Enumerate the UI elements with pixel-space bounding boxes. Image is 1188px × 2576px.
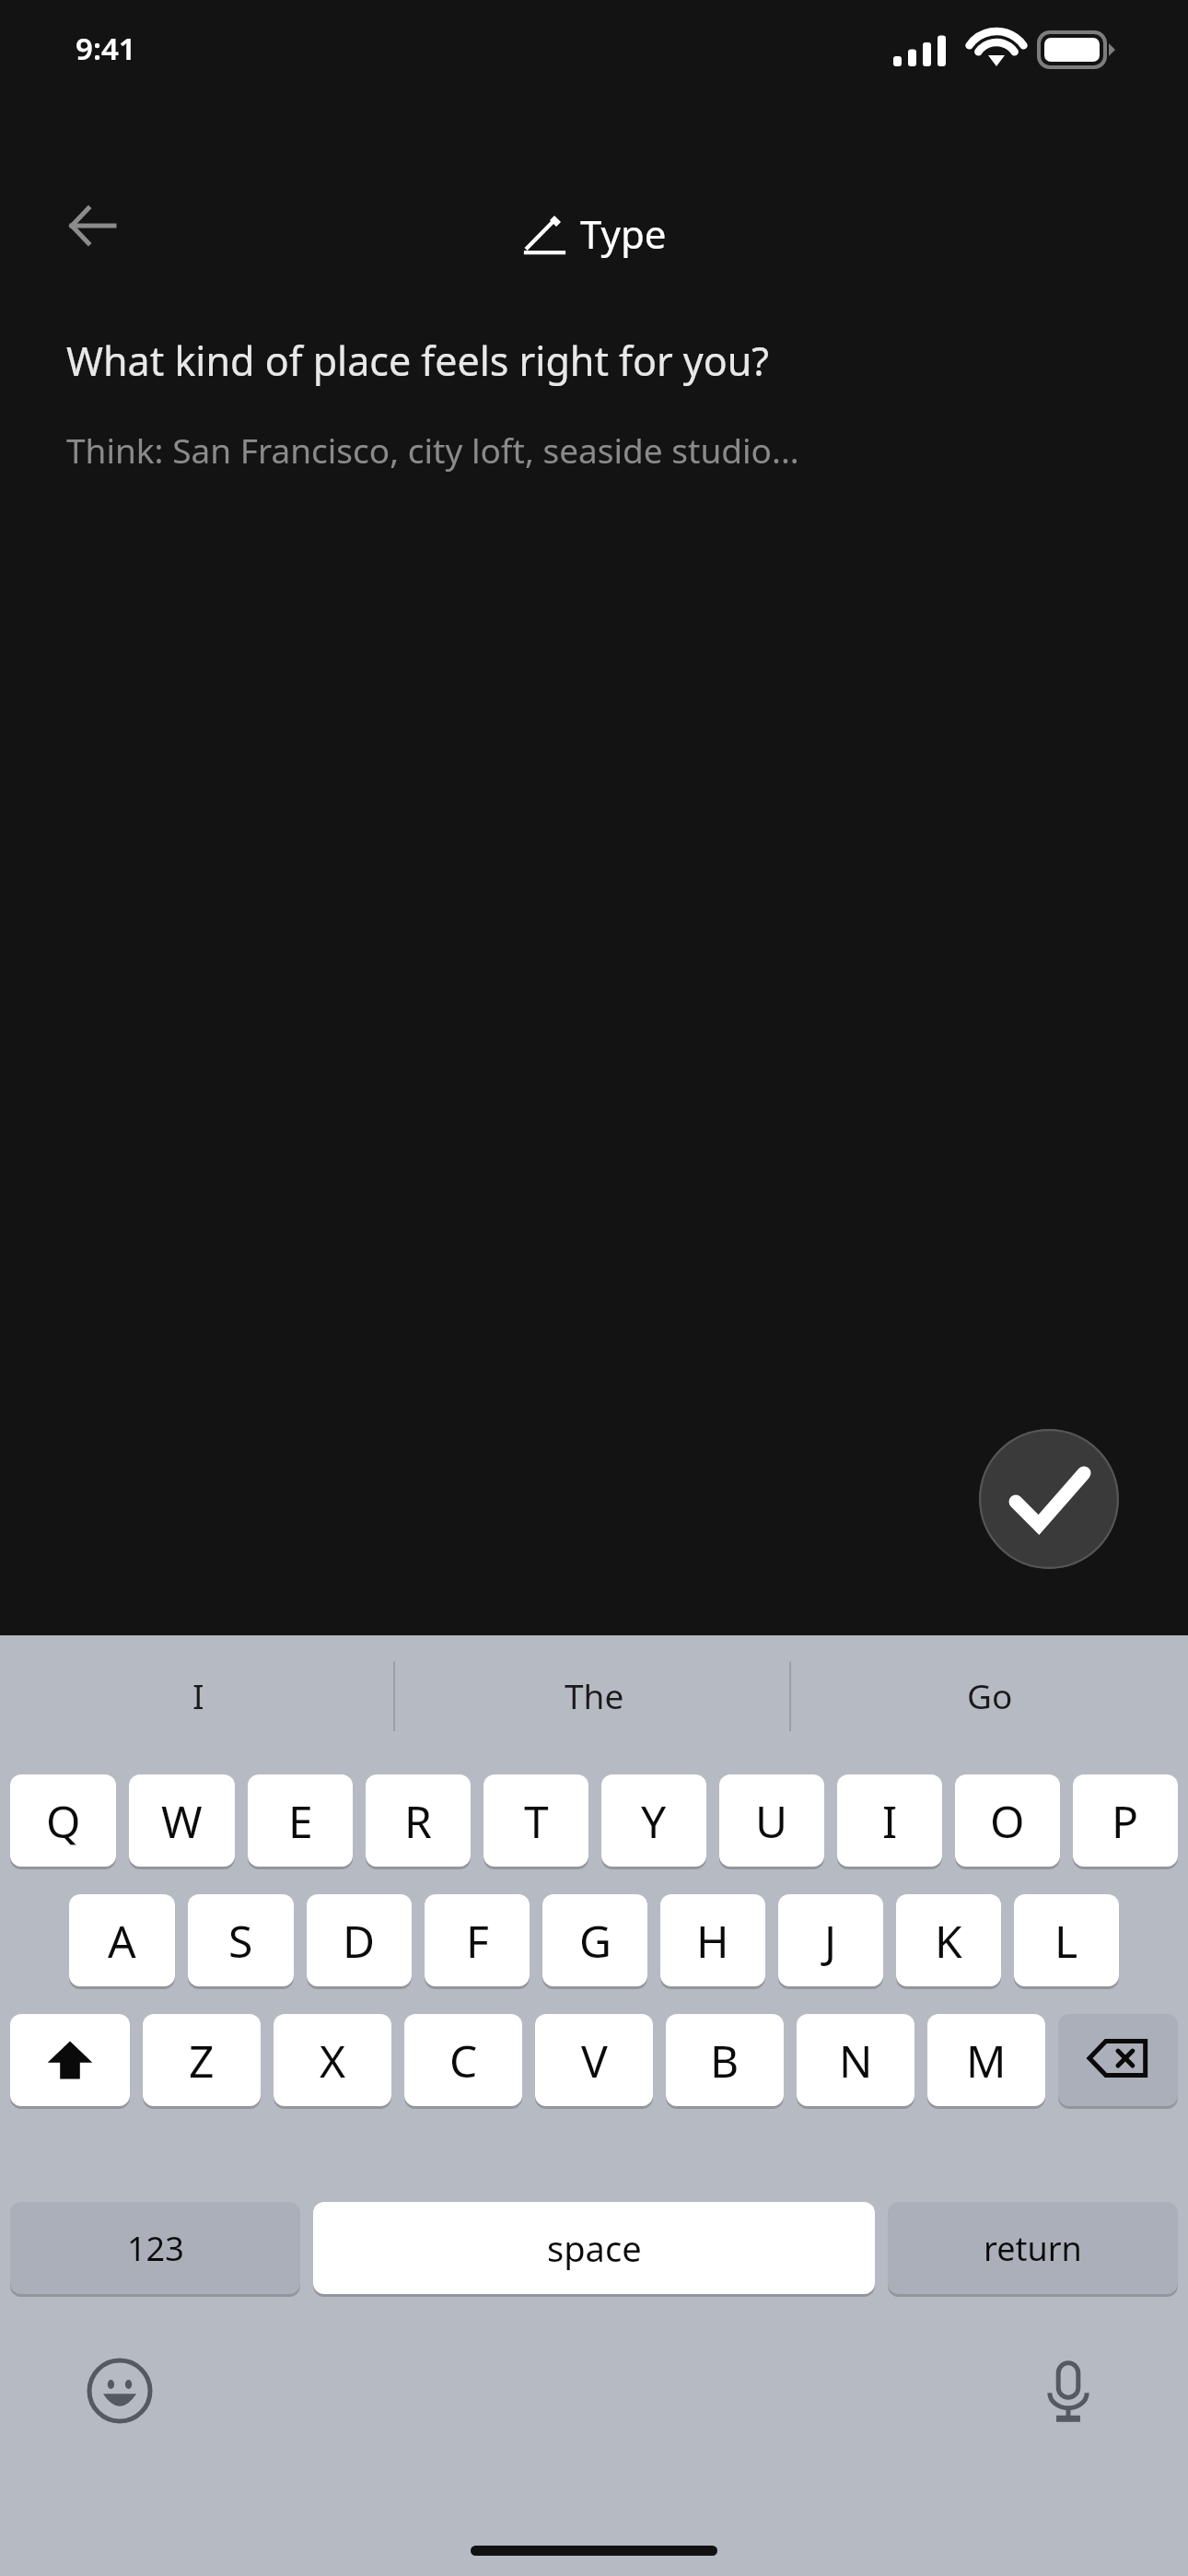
button[interactable]: E [248, 1774, 353, 1867]
staticText: space [547, 2224, 642, 2272]
staticText: N [839, 2031, 873, 2090]
staticText: Type [580, 207, 667, 260]
staticText: Q [46, 1791, 81, 1851]
button[interactable]: I [0, 1635, 396, 1755]
staticText: P [1112, 1791, 1139, 1851]
button[interactable]: T [483, 1774, 588, 1867]
button[interactable]: V [535, 2014, 653, 2106]
button[interactable]: 123 [10, 2202, 300, 2294]
staticText: C [449, 2031, 478, 2090]
button[interactable]: Back [51, 184, 134, 267]
staticText: Y [641, 1791, 667, 1851]
staticText: V [581, 2031, 608, 2090]
staticText: G [579, 1911, 611, 1971]
button[interactable]: Dictation [1027, 2349, 1110, 2432]
staticText: T [524, 1791, 549, 1851]
button[interactable]: Y [601, 1774, 706, 1867]
button[interactable]: Z [143, 2014, 261, 2106]
staticText: L [1054, 1911, 1078, 1971]
button[interactable]: G [542, 1894, 647, 1986]
button[interactable]: return [888, 2202, 1178, 2294]
button[interactable]: O [955, 1774, 1060, 1867]
staticText: H [696, 1911, 729, 1971]
button[interactable]: X [274, 2014, 391, 2106]
button[interactable]: A [69, 1894, 175, 1986]
staticText: U [755, 1791, 788, 1851]
staticText: M [966, 2031, 1007, 2090]
button[interactable]: M [927, 2014, 1045, 2106]
button[interactable]: I [837, 1774, 942, 1867]
staticText: Go [967, 1672, 1013, 1718]
button[interactable]: B [666, 2014, 784, 2106]
staticText: S [228, 1911, 253, 1971]
button[interactable]: Go [792, 1635, 1188, 1755]
button[interactable]: N [797, 2014, 914, 2106]
staticText: W [161, 1791, 203, 1851]
staticText: Think: San Francisco, city loft, seaside… [66, 427, 799, 473]
staticText: 9:41 [76, 28, 136, 69]
button[interactable]: S [188, 1894, 294, 1986]
staticText: return [984, 2226, 1082, 2271]
button[interactable]: F [425, 1894, 530, 1986]
button[interactable]: Shift [10, 2014, 130, 2106]
button[interactable]: P [1073, 1774, 1178, 1867]
button[interactable]: D [307, 1894, 412, 1986]
staticText: A [108, 1911, 136, 1971]
button[interactable]: Backspace [1058, 2014, 1178, 2106]
staticText: K [935, 1911, 962, 1971]
staticText: I [882, 1791, 898, 1851]
staticText: B [710, 2031, 740, 2090]
button[interactable]: Q [10, 1774, 116, 1867]
staticText: E [288, 1791, 313, 1851]
staticText: X [320, 2031, 346, 2090]
button[interactable]: H [660, 1894, 765, 1986]
button[interactable]: space [313, 2202, 875, 2294]
staticText: The [565, 1672, 624, 1718]
staticText: D [343, 1911, 376, 1971]
staticText: I [192, 1672, 204, 1718]
button[interactable]: The [396, 1635, 792, 1755]
staticText: J [824, 1911, 837, 1971]
staticText: R [404, 1791, 432, 1851]
button[interactable]: Emoji [78, 2349, 161, 2432]
button[interactable]: L [1014, 1894, 1119, 1986]
button[interactable]: J [778, 1894, 883, 1986]
button[interactable]: C [404, 2014, 522, 2106]
staticText: O [990, 1791, 1025, 1851]
button[interactable]: Confirm [979, 1429, 1119, 1569]
staticText: F [466, 1911, 489, 1971]
button[interactable]: U [719, 1774, 824, 1867]
staticText: 123 [127, 2226, 184, 2271]
button[interactable]: W [129, 1774, 235, 1867]
button[interactable]: K [896, 1894, 1001, 1986]
button[interactable]: R [366, 1774, 471, 1867]
staticText: What kind of place feels right for you? [66, 334, 770, 388]
staticText: Z [189, 2031, 215, 2090]
